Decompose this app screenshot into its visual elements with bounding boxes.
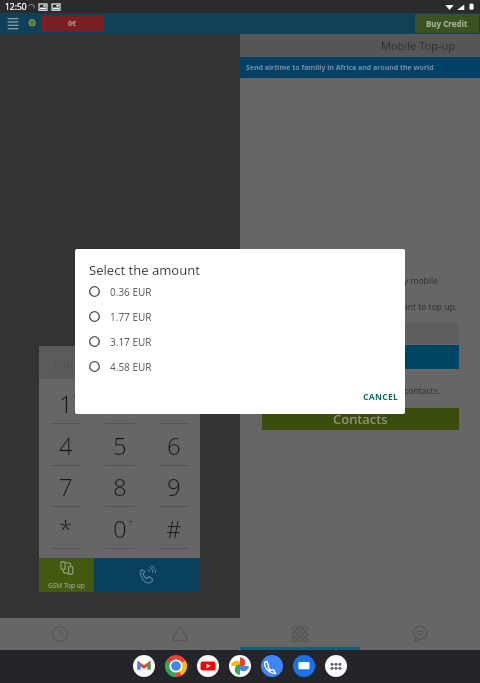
staticText: 7 xyxy=(59,470,73,503)
button[interactable]: Chrome xyxy=(165,655,187,677)
staticText: Mobile Top-up xyxy=(381,38,456,53)
button[interactable]: * xyxy=(39,507,93,549)
staticText: Enter the phone number for my mobile xyxy=(262,275,438,287)
staticText: 8 xyxy=(113,470,127,503)
button[interactable]: Messages xyxy=(293,655,315,677)
staticText: Send airtime to familly in Africa and ar… xyxy=(246,63,434,73)
button[interactable]: Status xyxy=(25,16,39,30)
button[interactable]: 2 xyxy=(93,382,147,424)
button[interactable]: GSM Top up xyxy=(39,558,94,592)
staticText: 4 xyxy=(59,429,73,462)
staticText: Select the amount xyxy=(89,261,200,279)
button[interactable]: Keypad xyxy=(240,619,360,650)
staticText: 3 xyxy=(167,387,181,420)
staticText: Or choose from the contacts. xyxy=(262,385,440,397)
button[interactable]: 1 xyxy=(39,382,93,424)
button[interactable]: 1.77 EUR xyxy=(75,304,405,329)
staticText: # xyxy=(166,512,182,545)
button[interactable]: CANCEL xyxy=(355,387,405,407)
button[interactable]: Contacts xyxy=(262,408,459,430)
staticText: Contacts xyxy=(333,410,388,428)
button[interactable] xyxy=(262,345,459,369)
button[interactable]: 0.36 EUR xyxy=(75,279,405,304)
button[interactable]: 7 xyxy=(39,465,93,507)
button[interactable]: Photos xyxy=(229,655,251,677)
button[interactable]: All apps xyxy=(325,655,347,677)
button[interactable]: 4.58 EUR xyxy=(75,354,405,379)
staticText: 0.36 EUR xyxy=(110,285,152,299)
button[interactable]: 0€ xyxy=(41,15,104,32)
button[interactable]: Buy Credit xyxy=(415,14,479,33)
staticText: 6 xyxy=(167,429,181,462)
button[interactable]: Gmail xyxy=(133,655,155,677)
staticText: 9 xyxy=(167,470,181,503)
button[interactable]: 6 xyxy=(147,424,200,466)
button[interactable]: Call xyxy=(94,558,200,592)
button[interactable]: # xyxy=(147,507,200,549)
staticText: 0€ xyxy=(68,19,77,29)
button[interactable]: 5 xyxy=(93,424,147,466)
staticText: CANCEL xyxy=(363,391,399,403)
staticText: ∞ xyxy=(74,391,81,401)
button[interactable]: 8 xyxy=(93,465,147,507)
staticText: * xyxy=(59,512,73,545)
button[interactable]: 9 xyxy=(147,465,200,507)
button[interactable]: 3.17 EUR xyxy=(75,329,405,354)
button[interactable]: Menu xyxy=(5,15,21,32)
staticText: 2 xyxy=(113,387,127,420)
staticText: 0 xyxy=(113,512,127,545)
button[interactable]: 3 xyxy=(147,382,200,424)
button[interactable]: Phone xyxy=(261,655,283,677)
staticText: Buy Credit xyxy=(426,18,468,29)
staticText: 1.77 EUR xyxy=(110,310,152,324)
staticText: 4.58 EUR xyxy=(110,360,152,374)
staticText: phone you want to top up. xyxy=(262,301,457,313)
button[interactable]: 4 xyxy=(39,424,93,466)
staticText: 5 xyxy=(113,429,127,462)
staticText: + xyxy=(128,515,134,527)
button[interactable] xyxy=(262,323,459,344)
staticText: GSM Top up xyxy=(48,581,85,590)
staticText: 1 xyxy=(59,387,73,420)
button[interactable]: 0 xyxy=(93,507,147,549)
button[interactable]: YouTube xyxy=(197,655,219,677)
staticText: 3.17 EUR xyxy=(110,335,152,349)
staticText: 12:50 xyxy=(5,1,27,13)
staticText: Enter phone number xyxy=(53,357,161,372)
